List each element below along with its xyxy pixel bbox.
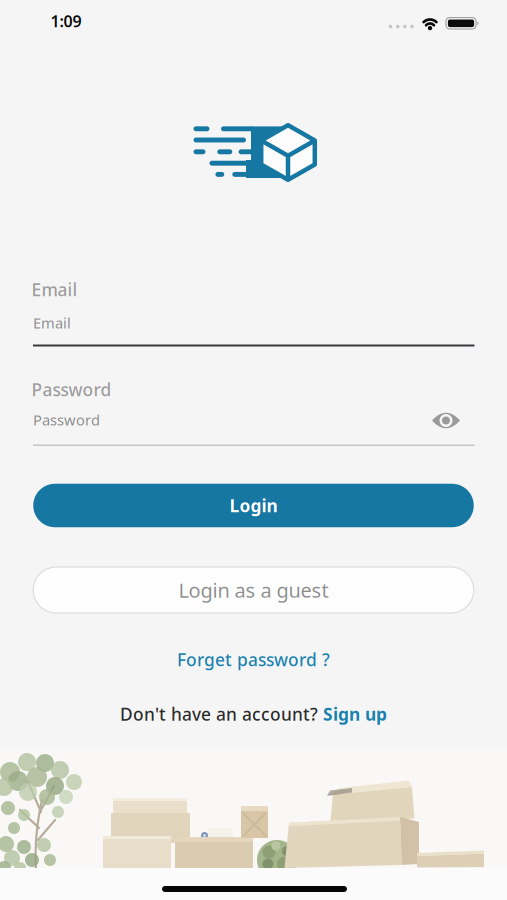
button[interactable]: Login as a guest	[33, 567, 474, 613]
staticText: Forget password ?	[177, 648, 330, 671]
staticText: Email	[33, 313, 71, 332]
staticText: Don't have an account?	[120, 702, 318, 725]
staticText: Login	[229, 494, 277, 517]
button[interactable]: Sign up	[323, 702, 387, 725]
staticText: 1:09	[50, 10, 81, 32]
staticText: Email	[31, 278, 77, 301]
button[interactable]: Forget password ?	[173, 644, 334, 675]
button[interactable]: Password text field	[33, 411, 474, 444]
button[interactable]: Show password	[431, 409, 461, 431]
staticText: Password	[33, 410, 100, 429]
button[interactable]: Login	[33, 484, 474, 527]
button[interactable]: Email text field	[33, 314, 474, 345]
staticText: Login as a guest	[178, 577, 328, 603]
staticText: Sign up	[323, 702, 387, 725]
staticText: Password	[31, 378, 111, 401]
